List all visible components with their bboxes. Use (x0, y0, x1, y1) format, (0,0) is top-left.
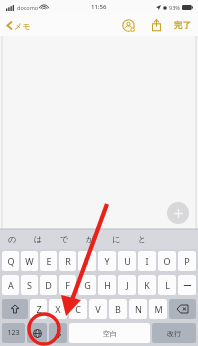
staticText: W (25, 255, 34, 267)
button[interactable]: Switch keyboard (27, 323, 47, 343)
staticText: L (165, 279, 170, 291)
other: Dictate (49, 323, 67, 343)
staticText: I (145, 255, 149, 267)
button[interactable]: Add (167, 202, 189, 224)
staticText: Y (104, 255, 110, 267)
staticText: X (55, 303, 61, 315)
button[interactable]: E (40, 251, 57, 271)
staticText: と (138, 234, 147, 244)
staticText: 11:56 (91, 3, 107, 11)
staticText: P (184, 255, 190, 267)
staticText: V (95, 303, 101, 315)
staticText: O (163, 255, 171, 267)
button[interactable]: 完了 (172, 17, 193, 34)
staticText: 93% (169, 4, 180, 11)
button[interactable]: S (21, 275, 38, 295)
button[interactable]: 123 (2, 323, 25, 343)
staticText: メモ (14, 21, 31, 31)
button[interactable]: O (158, 251, 176, 271)
staticText: A (8, 279, 14, 291)
staticText: G (84, 279, 91, 291)
button[interactable]: W (21, 251, 38, 271)
button[interactable]: は (34, 229, 60, 249)
button[interactable]: が (86, 229, 112, 249)
staticText: T (84, 255, 90, 267)
staticText: N (135, 303, 142, 315)
button[interactable]: Z (30, 299, 47, 319)
button[interactable]: G (78, 275, 96, 295)
button[interactable]: K (138, 275, 156, 295)
button[interactable]: N (129, 299, 147, 319)
button[interactable]: Share (147, 16, 165, 34)
button[interactable]: A (2, 275, 19, 295)
button[interactable]: Y (98, 251, 116, 271)
button[interactable]: Q (2, 251, 19, 271)
staticText: に (112, 234, 121, 244)
button[interactable]: X (49, 299, 67, 319)
staticText: が (86, 234, 95, 244)
staticText: の (8, 234, 17, 244)
staticText: H (104, 279, 111, 291)
button[interactable]: C (69, 299, 87, 319)
staticText: U (124, 255, 131, 267)
button[interactable]: B (109, 299, 127, 319)
staticText: J (126, 279, 129, 291)
button[interactable]: の (8, 229, 34, 249)
button[interactable]: 空白 (69, 323, 150, 343)
button[interactable]: T (78, 251, 96, 271)
staticText: R (65, 255, 71, 267)
button[interactable] (2, 299, 28, 319)
button[interactable]: に (112, 229, 138, 249)
staticText: K (144, 279, 150, 291)
button[interactable]: メモ (4, 17, 33, 34)
staticText: ー (183, 280, 192, 291)
staticText: docomo (17, 4, 39, 11)
staticText: で (60, 234, 69, 244)
staticText: D (45, 279, 52, 291)
button[interactable]: Collaborate (119, 16, 137, 34)
button[interactable]: M (149, 299, 167, 319)
staticText: 完了 (174, 20, 191, 31)
button[interactable]: P (178, 251, 196, 271)
staticText: Z (36, 303, 42, 315)
button[interactable]: F (59, 275, 76, 295)
button[interactable]: 改行 (152, 323, 196, 343)
staticText: M (154, 303, 163, 315)
staticText: 123 (7, 328, 20, 338)
staticText: F (65, 279, 70, 291)
staticText: は (34, 234, 43, 244)
button[interactable]: ー (178, 275, 196, 295)
button[interactable]: Dictate (49, 323, 67, 343)
button[interactable]: D (40, 275, 57, 295)
staticText: 改行 (167, 329, 181, 338)
button[interactable]: で (60, 229, 86, 249)
staticText: C (75, 303, 81, 315)
button[interactable] (169, 299, 196, 319)
button[interactable]: L (158, 275, 176, 295)
button[interactable]: H (98, 275, 116, 295)
button[interactable]: U (118, 251, 136, 271)
button[interactable]: V (89, 299, 107, 319)
staticText: E (46, 255, 52, 267)
button[interactable]: I (138, 251, 156, 271)
other: Switch keyboard (27, 323, 47, 343)
staticText: S (27, 279, 32, 291)
staticText: 空白 (103, 329, 117, 338)
button[interactable]: と (138, 229, 164, 249)
staticText: Q (7, 255, 15, 267)
staticText: B (115, 303, 121, 315)
button[interactable]: J (118, 275, 136, 295)
button[interactable]: R (59, 251, 76, 271)
